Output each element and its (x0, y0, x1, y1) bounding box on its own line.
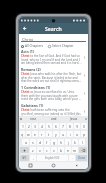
button[interactable]: 9 (74, 123, 80, 129)
button[interactable]: More (84, 116, 88, 122)
button[interactable]: t (46, 131, 52, 137)
button[interactable]: Jesus (64, 116, 84, 122)
staticText: Galatians (1) (21, 103, 44, 108)
staticText: j (68, 140, 69, 145)
staticText: f (46, 140, 48, 145)
staticText: h (60, 140, 63, 145)
button[interactable]: Done (76, 155, 87, 161)
button[interactable]: Christ (21, 36, 86, 42)
staticText: 7 (62, 124, 64, 129)
staticText: z (32, 148, 34, 153)
staticText: n (67, 148, 70, 153)
button[interactable]: 5 (46, 123, 52, 129)
staticText: r (41, 132, 43, 137)
button[interactable]: 4 (39, 123, 45, 129)
staticText: 4 (41, 124, 43, 129)
button[interactable]: 7 (60, 123, 66, 129)
staticText: p (83, 132, 86, 137)
button[interactable]: w (26, 131, 31, 137)
staticText: Done (78, 156, 86, 160)
button[interactable]: l (79, 139, 85, 145)
staticText: 5 (48, 124, 50, 129)
button[interactable]: q (20, 131, 25, 137)
staticText: Romans (2) (21, 67, 41, 72)
button[interactable]: m (72, 147, 78, 153)
staticText: c (46, 148, 48, 153)
button[interactable]: . (69, 155, 75, 161)
button[interactable]: i (67, 131, 73, 137)
button[interactable]: 0 (81, 123, 87, 129)
button[interactable]: j (65, 139, 71, 145)
button[interactable]: x (37, 147, 43, 153)
staticText: English (US) (45, 156, 60, 160)
button[interactable]: Back (65, 162, 88, 169)
button[interactable]: Backspace (79, 147, 87, 153)
button[interactable]: Home (42, 162, 65, 169)
staticText: Christ Jesus who walk his after the fles… (21, 72, 82, 83)
button[interactable]: and (44, 116, 64, 122)
button[interactable]: Settings (19, 116, 23, 122)
button[interactable]: Romans (2) (19, 67, 88, 85)
button[interactable]: !#1 (20, 155, 29, 161)
button[interactable]: o (74, 131, 80, 137)
button[interactable]: Back (20, 24, 29, 33)
button[interactable]: h (58, 139, 64, 145)
staticText: Christ to the Son of God. And if God had… (21, 54, 82, 65)
staticText: 6 (55, 124, 57, 129)
staticText: All Chapters (25, 44, 44, 48)
button[interactable]: v (51, 147, 57, 153)
button[interactable]: 1 (20, 123, 25, 129)
staticText: s (32, 140, 34, 145)
staticText: d (39, 140, 42, 145)
button[interactable]: u (60, 131, 66, 137)
staticText: b (60, 148, 63, 153)
button[interactable]: f (44, 139, 50, 145)
staticText: Select Chapter (52, 44, 74, 48)
button[interactable]: , (30, 155, 36, 161)
button[interactable]: a (22, 139, 29, 145)
staticText: 2 (28, 124, 30, 129)
staticText: g (53, 140, 56, 145)
button[interactable]: English (US) (37, 155, 68, 161)
button[interactable]: b (58, 147, 64, 153)
staticText: Acts (1) (21, 49, 35, 54)
button[interactable]: e (32, 131, 38, 137)
staticText: l (82, 140, 83, 145)
button[interactable]: 6 (53, 123, 59, 129)
button[interactable]: Select Chapter (48, 44, 74, 48)
staticText: k (74, 140, 76, 145)
button[interactable]: z (30, 147, 36, 153)
button[interactable]: n (65, 147, 71, 153)
button[interactable]: 2 (26, 123, 31, 129)
button[interactable]: k (72, 139, 78, 145)
staticText: . (72, 156, 73, 160)
button[interactable]: r (39, 131, 45, 137)
staticText: w (27, 132, 30, 137)
button[interactable]: y (53, 131, 59, 137)
staticText: Christ (22, 37, 34, 42)
button[interactable]: s (30, 139, 36, 145)
staticText: !#1 (22, 156, 27, 160)
button[interactable]: 8 (67, 123, 73, 129)
button[interactable]: rose (23, 116, 44, 122)
staticText: i (70, 132, 71, 137)
button[interactable]: 3 (32, 123, 38, 129)
button[interactable]: p (81, 131, 87, 137)
staticText: 1 Corinthians (1) (21, 85, 51, 90)
button[interactable]: d (37, 139, 43, 145)
button[interactable]: Galatians (1) (19, 103, 88, 116)
button[interactable]: g (51, 139, 57, 145)
staticText: e (34, 132, 36, 137)
button[interactable]: c (44, 147, 50, 153)
staticText: x (39, 148, 41, 153)
staticText: 8 (69, 124, 71, 129)
button[interactable]: Acts (1) (19, 49, 88, 67)
staticText: , (33, 156, 34, 160)
button[interactable]: Shift (20, 147, 29, 153)
staticText: q (21, 132, 24, 137)
staticText: v (53, 148, 55, 153)
button[interactable]: Recents (19, 162, 42, 169)
button[interactable]: All Chapters (21, 44, 44, 48)
staticText: Search (45, 25, 62, 32)
button[interactable]: 1 Corinthians (1) (19, 85, 88, 103)
